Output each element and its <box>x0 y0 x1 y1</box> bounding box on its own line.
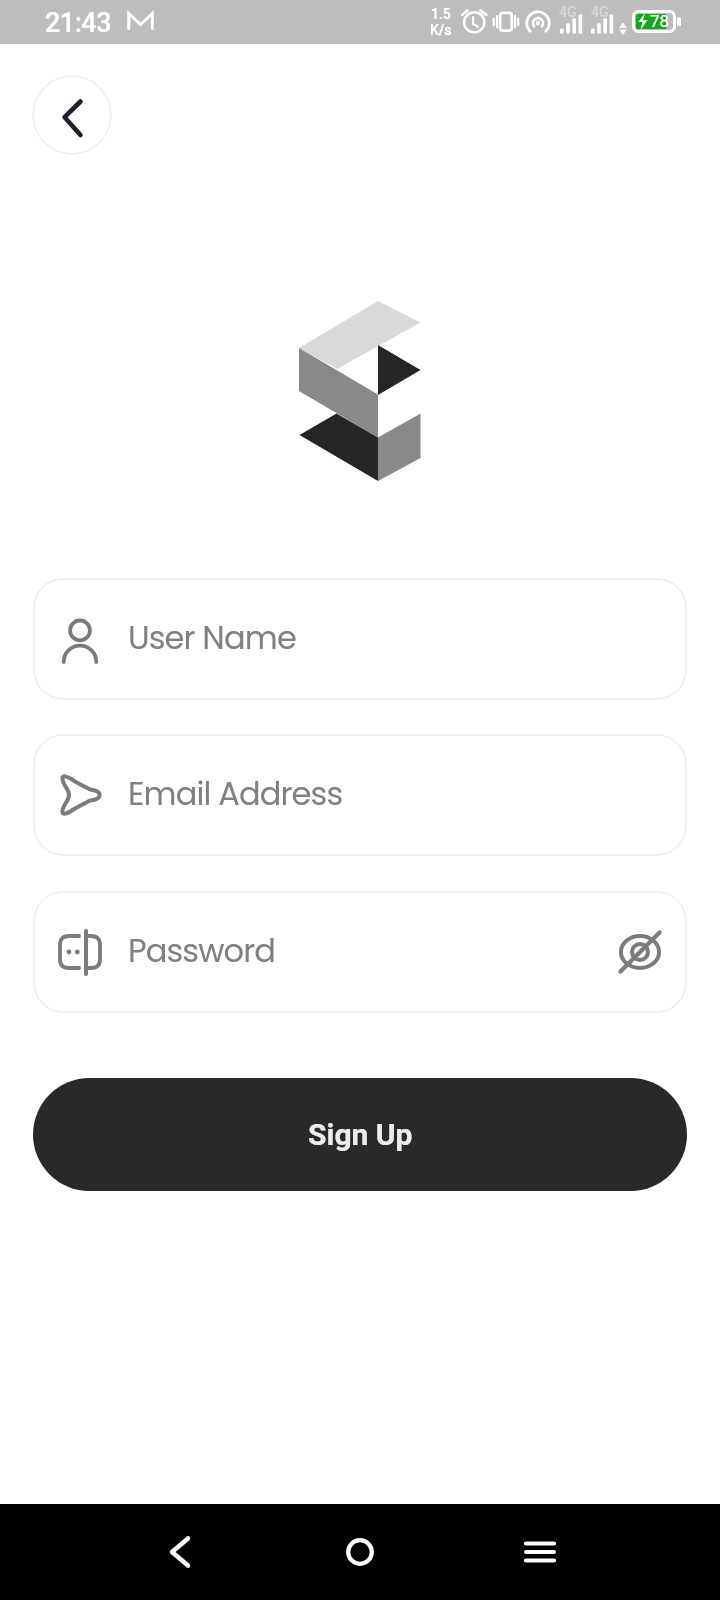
button[interactable]: Back <box>32 75 112 155</box>
staticText: Email Address <box>128 771 343 816</box>
staticText: 4G <box>591 4 609 20</box>
button[interactable]: Recent apps <box>500 1504 580 1600</box>
staticText: K/s <box>430 22 452 38</box>
button[interactable]: User Name <box>33 578 687 700</box>
button[interactable]: Sign Up <box>33 1078 687 1191</box>
button[interactable]: Password <box>33 891 687 1013</box>
staticText: Password <box>128 928 276 973</box>
button[interactable]: Home <box>320 1512 400 1592</box>
staticText: Sign Up <box>308 1117 413 1152</box>
staticText: 21:43 <box>45 7 112 39</box>
staticText: 1.5 <box>431 6 451 22</box>
staticText: 4G <box>559 4 577 20</box>
button[interactable]: Email Address <box>33 734 687 856</box>
button[interactable]: Show password <box>609 921 671 983</box>
staticText: User Name <box>128 615 296 660</box>
staticText: 78 <box>650 11 670 31</box>
button[interactable]: Back <box>140 1504 220 1600</box>
